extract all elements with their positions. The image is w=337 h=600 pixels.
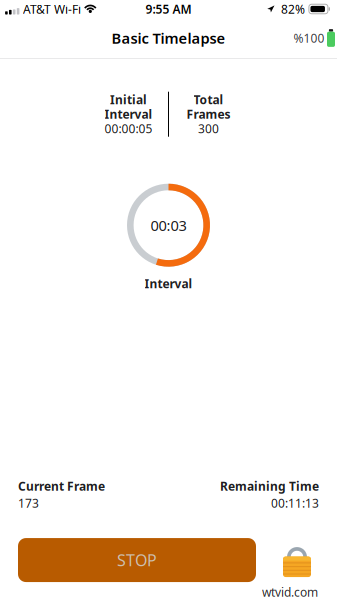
staticText: wtvid.com xyxy=(262,584,318,600)
staticText: 00:00:05 xyxy=(104,121,152,137)
staticText: 173 xyxy=(18,495,39,511)
staticText: Remaining Time xyxy=(220,478,319,494)
staticText: STOP xyxy=(117,549,157,571)
staticText: 82% xyxy=(281,1,305,17)
staticText: AT&T Wi-Fi xyxy=(23,1,81,17)
staticText: %100 xyxy=(293,30,324,46)
staticText: 300 xyxy=(198,121,219,137)
button[interactable]: STOP xyxy=(18,538,256,582)
staticText: Basic Timelapse xyxy=(111,28,225,48)
staticText: Total xyxy=(193,92,223,108)
staticText: 9:55 AM xyxy=(145,1,191,17)
staticText: Initial xyxy=(110,92,147,108)
button[interactable]: Lock xyxy=(283,543,311,577)
button[interactable]: Battery 100 percent xyxy=(293,25,335,51)
staticText: 00:11:13 xyxy=(271,495,319,511)
staticText: Frames xyxy=(186,106,230,122)
staticText: 00:03 xyxy=(150,215,186,235)
staticText: Current Frame xyxy=(18,478,105,494)
staticText: Interval xyxy=(104,106,152,122)
staticText: Interval xyxy=(144,276,192,292)
